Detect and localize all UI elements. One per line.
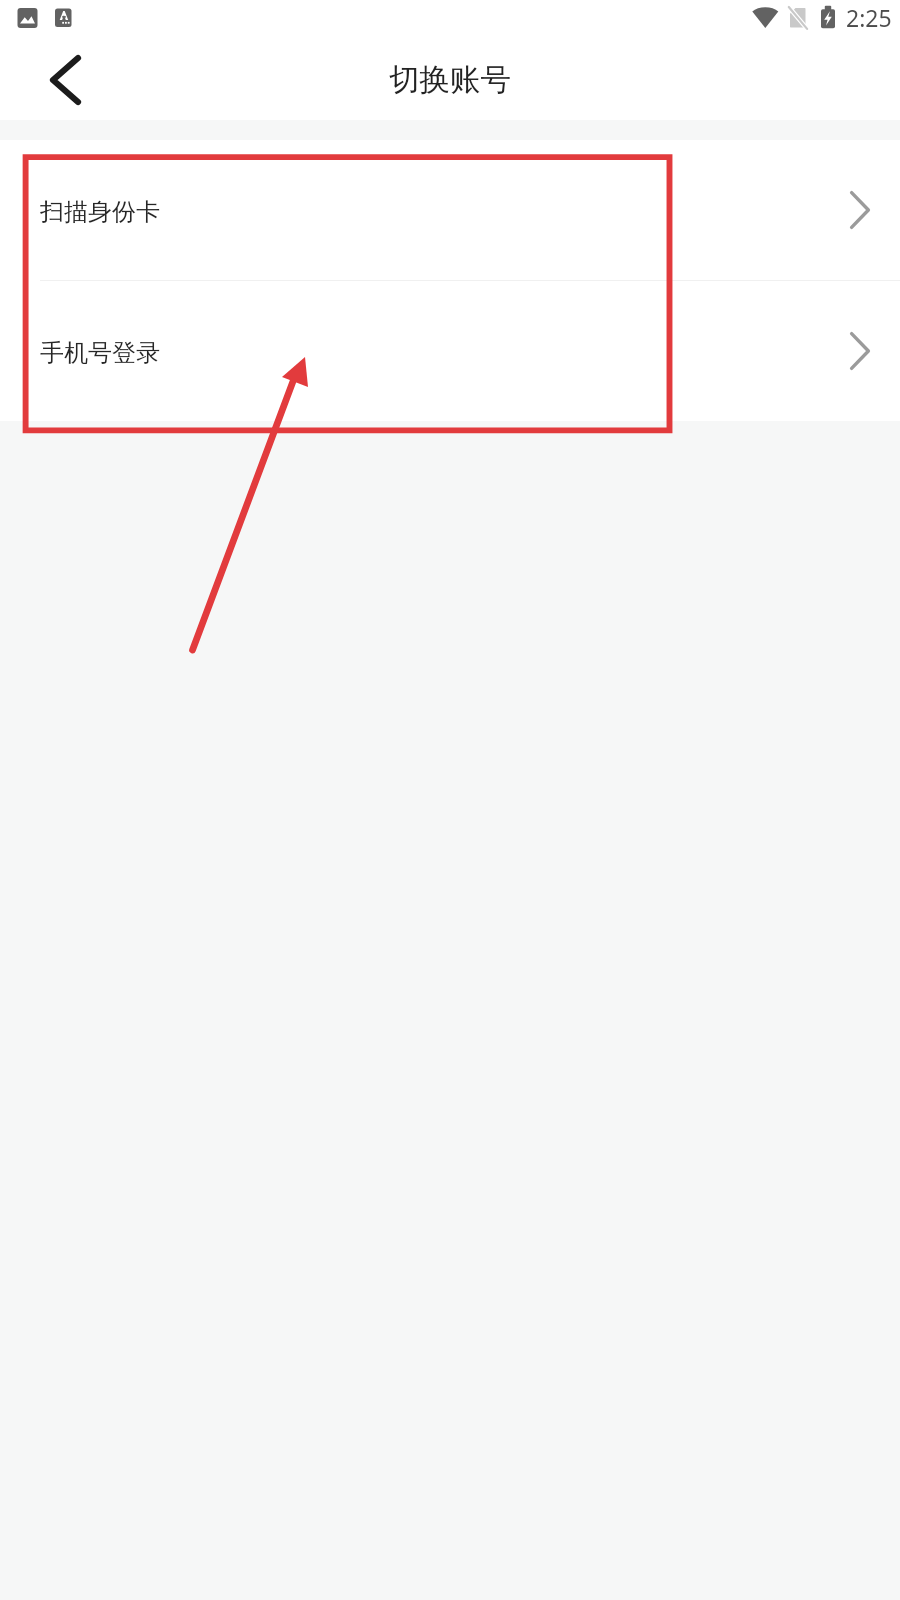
- button[interactable]: 扫描身份卡: [0, 140, 900, 280]
- staticText: 切换账号: [389, 61, 511, 99]
- button[interactable]: 手机号登录: [0, 281, 900, 421]
- staticText: 扫描身份卡: [40, 197, 160, 227]
- staticText: 手机号登录: [40, 338, 160, 368]
- button[interactable]: Back: [22, 43, 108, 117]
- staticText: 2:25: [846, 2, 892, 33]
